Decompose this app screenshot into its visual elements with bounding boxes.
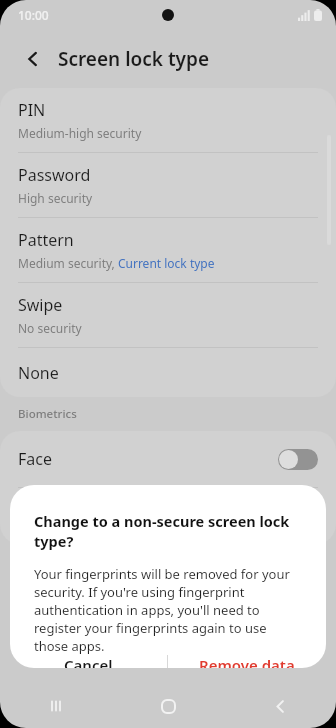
staticText: High security <box>18 190 93 206</box>
button[interactable]: Face <box>0 431 336 487</box>
staticText: PIN <box>18 99 46 121</box>
button[interactable]: Recents <box>0 684 112 728</box>
button[interactable]: Pattern <box>0 218 336 282</box>
staticText: Cancel <box>64 655 113 668</box>
staticText: Medium security, Current lock type <box>18 255 215 271</box>
button[interactable]: Cancel <box>10 655 167 668</box>
button[interactable]: Swipe <box>0 283 336 347</box>
staticText: Face <box>18 448 278 470</box>
staticText: None <box>18 362 59 384</box>
button[interactable]: Back <box>16 42 50 76</box>
staticText: Change to a non-secure screen lock type? <box>34 511 302 551</box>
staticText: Medium-high security <box>18 125 142 141</box>
staticText: Pattern <box>18 229 74 251</box>
staticText: Remove data <box>199 655 295 668</box>
staticText: Your fingerprints will be removed for yo… <box>34 565 302 655</box>
button[interactable]: Home <box>112 684 224 728</box>
button[interactable]: PIN <box>0 88 336 152</box>
button[interactable]: None <box>0 348 336 397</box>
staticText: 10:00 <box>18 7 49 23</box>
staticText: Screen lock type <box>58 46 210 72</box>
button[interactable] <box>278 449 318 470</box>
button[interactable]: Back <box>224 684 336 728</box>
staticText: Password <box>18 164 91 186</box>
staticText: No security <box>18 320 82 336</box>
button[interactable]: Remove data <box>168 655 326 668</box>
button[interactable]: Password <box>0 153 336 217</box>
staticText: Biometrics <box>18 406 336 422</box>
staticText: Swipe <box>18 294 63 316</box>
